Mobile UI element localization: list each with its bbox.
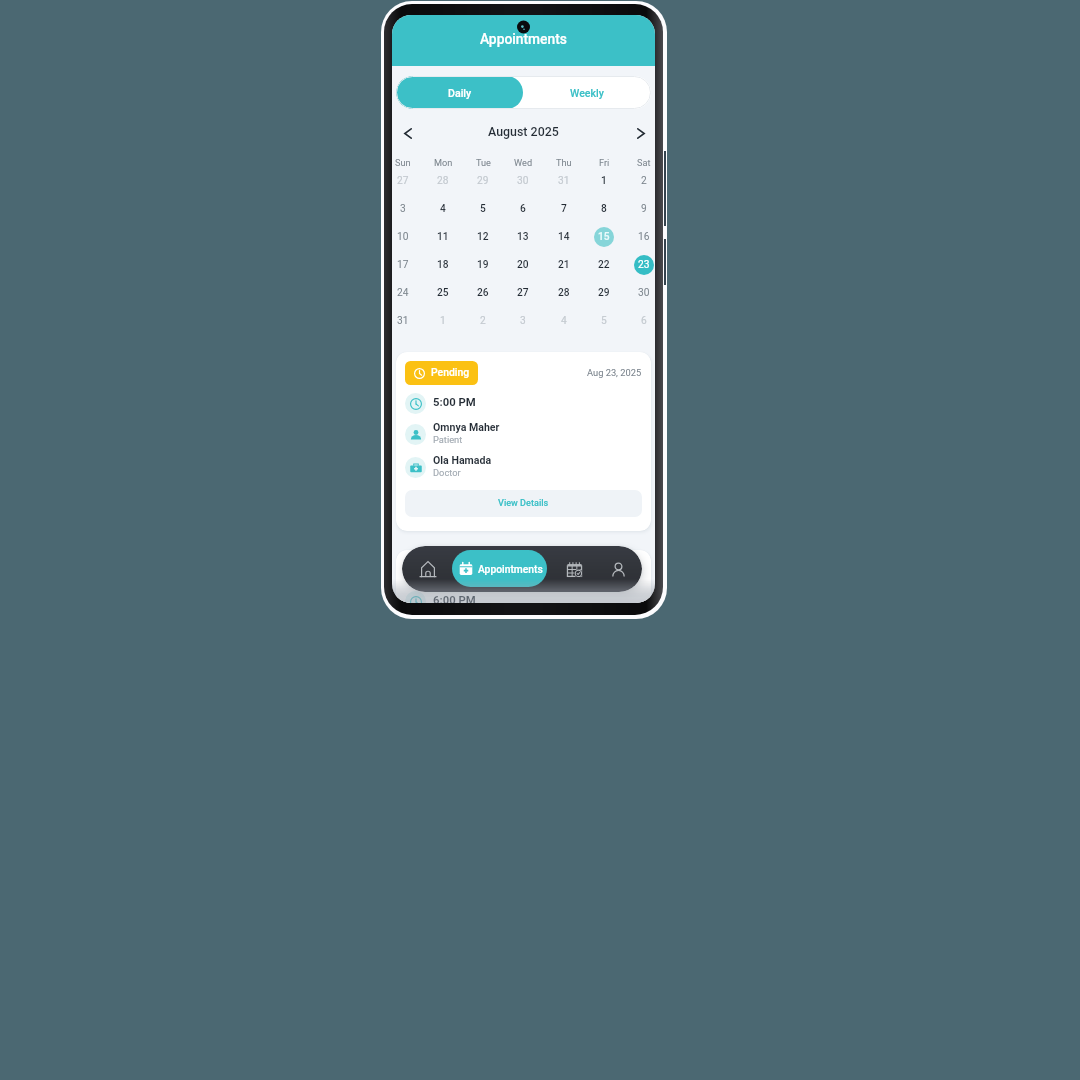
staticText: 15 — [598, 231, 610, 243]
button[interactable]: 3 — [393, 199, 413, 219]
button[interactable]: 25 — [433, 283, 453, 303]
staticText: 25 — [437, 287, 449, 299]
staticText: Tue — [476, 157, 491, 167]
button[interactable]: 17 — [393, 255, 413, 275]
staticText: 5:00 PM — [433, 396, 476, 409]
button[interactable]: Pending — [405, 559, 478, 583]
button[interactable]: 28 — [433, 171, 453, 191]
staticText: 31 — [397, 315, 409, 327]
button[interactable]: 29 — [473, 171, 493, 191]
button[interactable]: Pending — [396, 352, 651, 531]
button[interactable]: Pending — [405, 361, 478, 385]
button[interactable]: 1 — [433, 311, 453, 331]
button[interactable]: 5 — [473, 199, 493, 219]
staticText: 30 — [517, 175, 529, 187]
button[interactable]: 8 — [594, 199, 614, 219]
staticText: 28 — [558, 287, 570, 299]
staticText: 6 — [641, 315, 647, 327]
staticText: 1 — [601, 175, 607, 187]
staticText: 31 — [558, 175, 570, 187]
button[interactable]: Home — [410, 546, 446, 592]
staticText: Wed — [514, 157, 533, 167]
button[interactable]: Pending — [396, 550, 651, 603]
staticText: 20 — [517, 259, 529, 271]
button[interactable]: Profile — [600, 546, 636, 592]
staticText: 1 — [440, 315, 446, 327]
staticText: Weekly — [570, 87, 604, 99]
button[interactable]: Previous month — [397, 122, 419, 144]
staticText: Pending — [431, 564, 470, 576]
staticText: 3 — [400, 203, 406, 215]
button[interactable]: 21 — [554, 255, 574, 275]
staticText: Ola Hamada — [433, 454, 492, 466]
button[interactable]: 11 — [433, 227, 453, 247]
staticText: 27 — [517, 287, 529, 299]
button[interactable]: 9 — [634, 199, 654, 219]
staticText: 29 — [477, 175, 489, 187]
staticText: August 2025 — [488, 124, 559, 139]
button[interactable]: Next month — [630, 122, 652, 144]
staticText: 27 — [397, 175, 409, 187]
staticText: 18 — [437, 259, 449, 271]
staticText: 3 — [520, 315, 526, 327]
button[interactable]: 4 — [554, 311, 574, 331]
button[interactable]: 19 — [473, 255, 493, 275]
staticText: 12 — [477, 231, 489, 243]
button[interactable]: 20 — [513, 255, 533, 275]
button[interactable]: 28 — [554, 283, 574, 303]
button[interactable]: 27 — [393, 171, 413, 191]
button[interactable]: 18 — [433, 255, 453, 275]
staticText: 4 — [440, 203, 446, 215]
button[interactable]: 12 — [473, 227, 493, 247]
button[interactable]: Appointments — [452, 550, 547, 587]
button[interactable]: 3 — [513, 311, 533, 331]
staticText: 6:00 PM — [433, 594, 476, 603]
staticText: Mon — [434, 157, 453, 167]
staticText: Daily — [448, 87, 472, 99]
staticText: View Details — [498, 498, 549, 509]
button[interactable]: 16 — [634, 227, 654, 247]
staticText: Fri — [599, 157, 610, 167]
staticText: 22 — [598, 259, 610, 271]
button[interactable]: 27 — [513, 283, 533, 303]
button[interactable]: 7 — [554, 199, 574, 219]
button[interactable]: 6 — [634, 311, 654, 331]
staticText: 29 — [598, 287, 610, 299]
button[interactable]: View Details — [405, 490, 642, 517]
button[interactable]: Daily — [396, 76, 523, 109]
staticText: 10 — [397, 231, 409, 243]
staticText: 28 — [437, 175, 449, 187]
button[interactable]: 30 — [634, 283, 654, 303]
button[interactable]: 22 — [594, 255, 614, 275]
staticText: 2 — [641, 175, 647, 187]
staticText: 21 — [558, 259, 570, 271]
button[interactable]: 23 — [634, 255, 654, 275]
button[interactable]: 15 — [594, 227, 614, 247]
button[interactable]: 29 — [594, 283, 614, 303]
staticText: 5 — [480, 203, 486, 215]
staticText: Pending — [431, 366, 470, 378]
button[interactable]: 31 — [393, 311, 413, 331]
button[interactable]: 13 — [513, 227, 533, 247]
button[interactable]: 6 — [513, 199, 533, 219]
button[interactable]: 30 — [513, 171, 533, 191]
button[interactable]: 2 — [634, 171, 654, 191]
button[interactable]: 31 — [554, 171, 574, 191]
staticText: Aug 23, 2025 — [587, 367, 642, 378]
button[interactable]: 5 — [594, 311, 614, 331]
button[interactable]: 4 — [433, 199, 453, 219]
button[interactable]: 1 — [594, 171, 614, 191]
staticText: Appointments — [478, 563, 543, 575]
staticText: 7 — [561, 203, 567, 215]
button[interactable]: 2 — [473, 311, 493, 331]
button[interactable]: 26 — [473, 283, 493, 303]
staticText: 2 — [480, 315, 486, 327]
button[interactable]: 10 — [393, 227, 413, 247]
button[interactable]: 24 — [393, 283, 413, 303]
button[interactable]: Weekly — [523, 76, 651, 109]
staticText: 26 — [477, 287, 489, 299]
button[interactable]: 14 — [554, 227, 574, 247]
staticText: 19 — [477, 259, 489, 271]
staticText: Aug 23, 2025 — [587, 565, 642, 576]
button[interactable]: Schedule — [556, 546, 592, 592]
